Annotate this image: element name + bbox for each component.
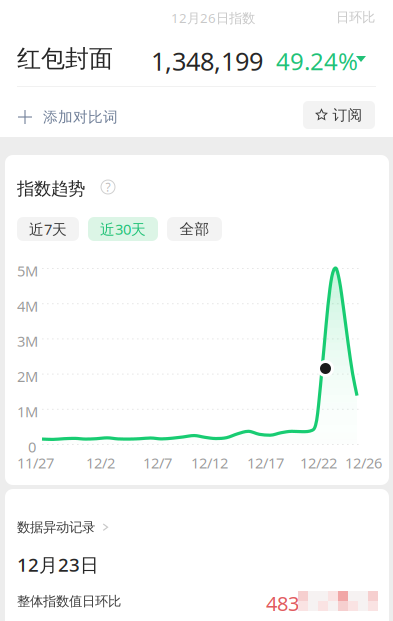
staticText: ? [105, 179, 110, 195]
staticText: 添加对比词 [43, 108, 118, 126]
staticText: 日环比 [336, 9, 375, 25]
button[interactable]: 全部 [167, 217, 222, 241]
staticText: 12/17 [247, 453, 284, 472]
staticText: 指数趋势 [17, 178, 85, 199]
staticText: 12/22 [300, 453, 337, 472]
staticText: 5M [17, 261, 38, 280]
staticText: 12月26日指数 [171, 9, 255, 27]
button[interactable]: 添加对比词 [0, 95, 136, 139]
staticText: 3M [17, 331, 38, 351]
staticText: 1,348,199 [151, 44, 263, 78]
staticText: 12/2 [86, 453, 115, 472]
staticText: 12/12 [191, 453, 228, 472]
button[interactable]: 订阅 [303, 101, 375, 129]
staticText: 11/27 [17, 453, 54, 472]
staticText: 数据异动记录 [17, 519, 95, 535]
staticText: 1M [17, 402, 38, 421]
staticText: 12月23日 [17, 552, 99, 577]
staticText: 12/26 [345, 453, 382, 472]
staticText: 订阅 [332, 106, 362, 124]
staticText: 红包封面 [17, 44, 113, 73]
staticText: 49.24% [276, 45, 358, 77]
staticText: 4M [17, 296, 38, 316]
staticText: 整体指数值日环比 [17, 593, 121, 609]
staticText: 0 [28, 437, 36, 456]
staticText: 483 [266, 590, 299, 617]
staticText: 12/7 [143, 453, 172, 472]
button[interactable]: 数据异动记录 [0, 511, 126, 543]
staticText: 近7天 [29, 219, 67, 239]
button[interactable]: 近7天 [17, 217, 79, 241]
button[interactable]: 近30天 [88, 217, 158, 241]
staticText: 全部 [179, 220, 209, 238]
staticText: 2M [17, 367, 38, 386]
staticText: 近30天 [100, 219, 146, 239]
